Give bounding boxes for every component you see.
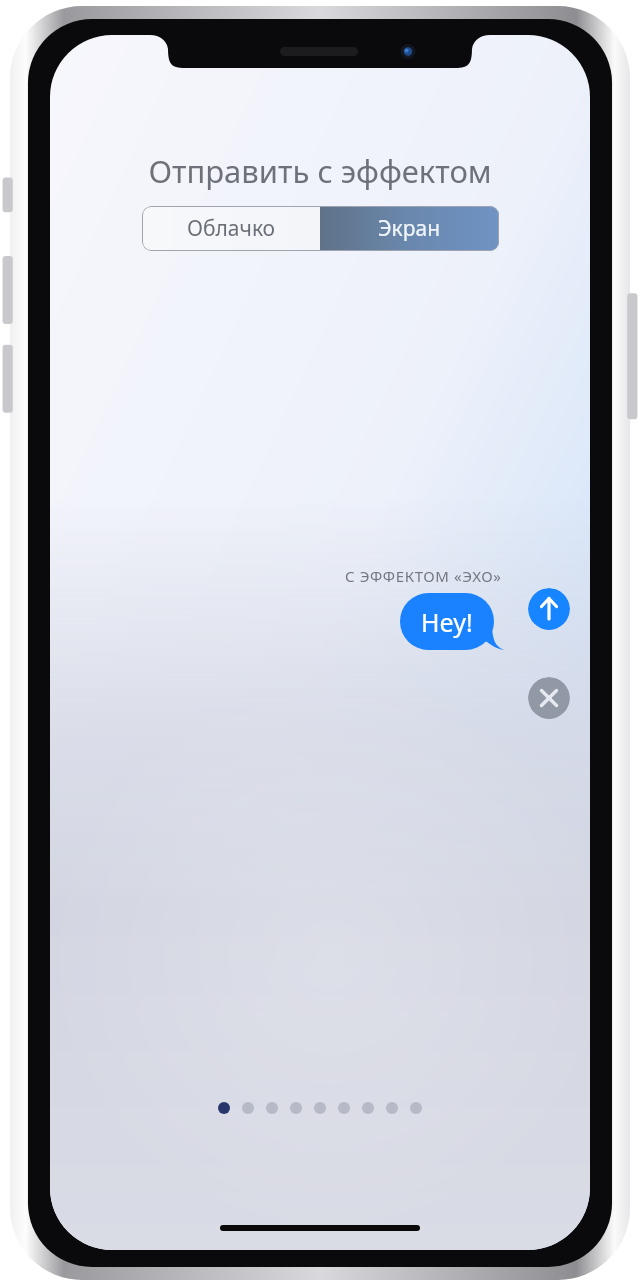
staticText: Облачко	[187, 214, 276, 243]
button[interactable]	[410, 1102, 422, 1114]
staticText: Отправить с эффектом	[148, 150, 492, 192]
button[interactable]	[290, 1102, 302, 1114]
button[interactable]: Отправить	[528, 588, 570, 630]
button[interactable]	[386, 1102, 398, 1114]
staticText: С ЭФФЕКТОМ «ЭХО»	[345, 566, 502, 586]
button[interactable]: Экран	[320, 206, 499, 251]
button[interactable]: Отменить	[528, 677, 570, 719]
button[interactable]	[266, 1102, 278, 1114]
staticText: Экран	[378, 214, 441, 243]
button[interactable]	[218, 1102, 230, 1114]
button[interactable]	[338, 1102, 350, 1114]
button[interactable]	[242, 1102, 254, 1114]
button[interactable]: Облачко	[142, 206, 320, 251]
staticText: Hey!	[421, 605, 473, 639]
button[interactable]	[362, 1102, 374, 1114]
button[interactable]	[314, 1102, 326, 1114]
